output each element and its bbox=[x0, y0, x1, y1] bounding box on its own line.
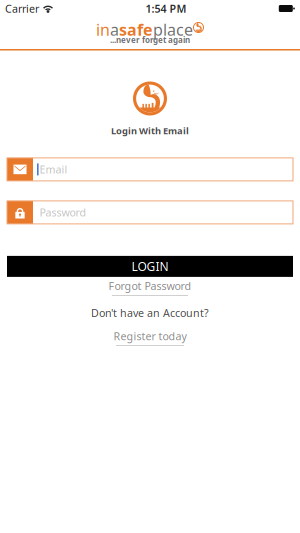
button[interactable]: Forgot Password bbox=[108, 279, 191, 296]
button[interactable]: LOGIN bbox=[7, 256, 293, 277]
staticText: Forgot Password bbox=[108, 279, 191, 293]
staticText: place bbox=[153, 19, 193, 40]
staticText: in bbox=[96, 19, 110, 40]
staticText: Carrier bbox=[5, 1, 39, 16]
button[interactable]: Password bbox=[7, 201, 293, 224]
staticText: Password bbox=[40, 205, 87, 219]
staticText: Email bbox=[40, 162, 68, 176]
staticText: 1:54 PM bbox=[145, 1, 186, 16]
staticText: ...never forget again bbox=[110, 35, 190, 45]
button[interactable]: Email bbox=[7, 158, 293, 181]
button[interactable]: Register today bbox=[113, 329, 186, 346]
staticText: Login With Email bbox=[111, 124, 189, 137]
staticText: Register today bbox=[113, 329, 186, 343]
staticText: LOGIN bbox=[131, 258, 168, 274]
staticText: safe bbox=[119, 19, 153, 40]
staticText: Don't have an Account? bbox=[91, 306, 209, 320]
staticText: a bbox=[110, 19, 119, 40]
